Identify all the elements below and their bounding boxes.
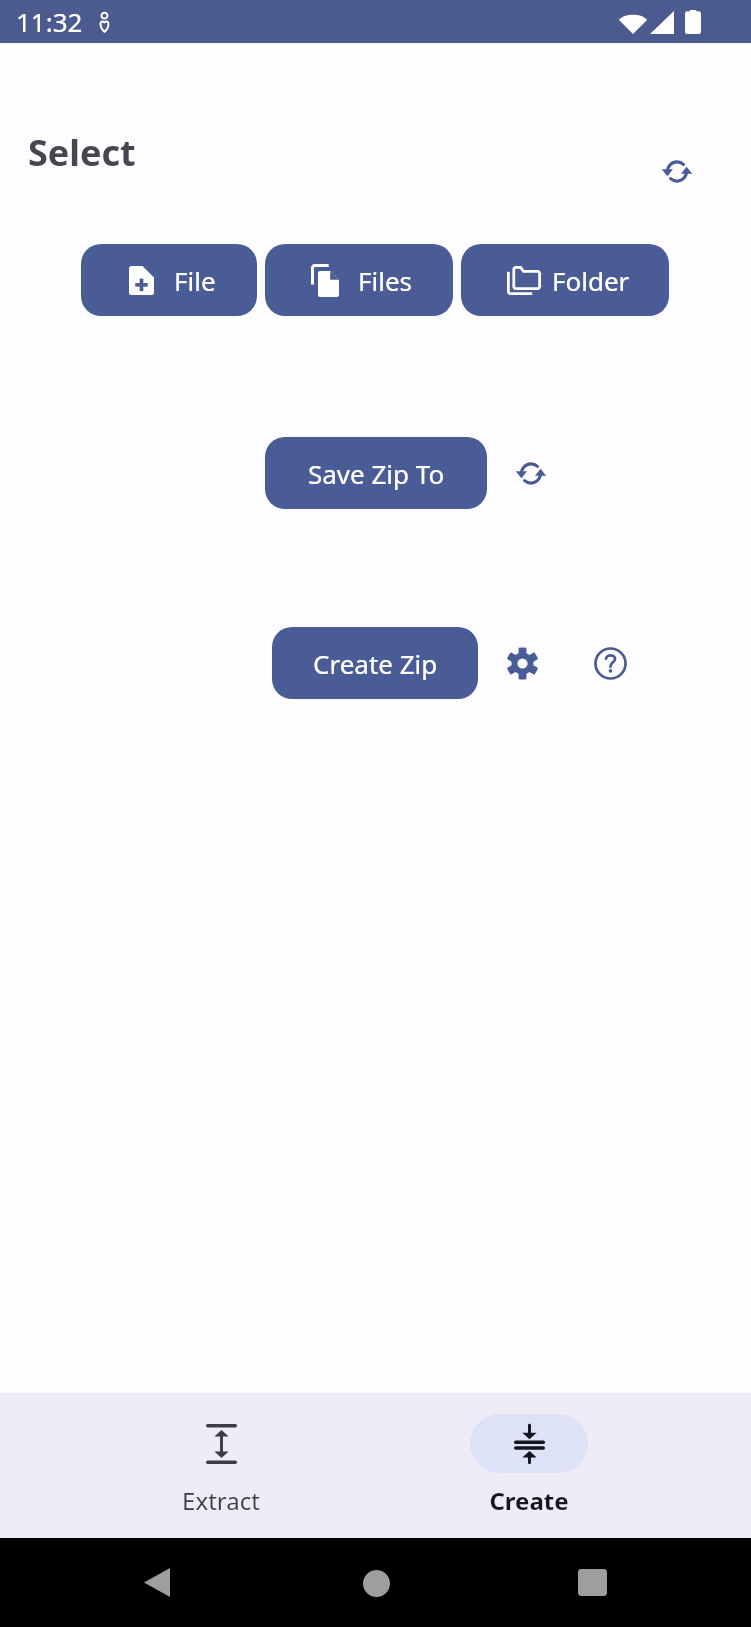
staticText: Folder	[552, 263, 630, 298]
button[interactable]: Folder	[461, 244, 669, 316]
button[interactable]: Create Zip	[272, 627, 478, 699]
staticText: File	[174, 263, 216, 298]
staticText: Select	[28, 128, 136, 177]
button[interactable]: Extract	[67, 1393, 375, 1538]
button[interactable]: Recents	[558, 1548, 626, 1616]
button[interactable]: Files	[265, 244, 453, 316]
staticText: Create	[489, 1484, 569, 1517]
button[interactable]: File	[81, 244, 257, 316]
button[interactable]: Create	[375, 1393, 683, 1538]
button[interactable]: Home	[342, 1549, 410, 1617]
staticText: Create Zip	[313, 646, 438, 681]
staticText: Save Zip To	[308, 456, 445, 491]
staticText: 11:32	[16, 4, 83, 39]
button[interactable]: Back	[123, 1548, 191, 1616]
button[interactable]: Help	[585, 638, 635, 688]
button[interactable]: Save Zip To	[265, 437, 487, 509]
staticText: Extract	[182, 1484, 260, 1517]
button[interactable]: Settings	[497, 638, 547, 688]
button[interactable]: Refresh	[653, 147, 701, 195]
button[interactable]: Refresh save location	[507, 449, 555, 497]
staticText: Files	[358, 263, 413, 298]
